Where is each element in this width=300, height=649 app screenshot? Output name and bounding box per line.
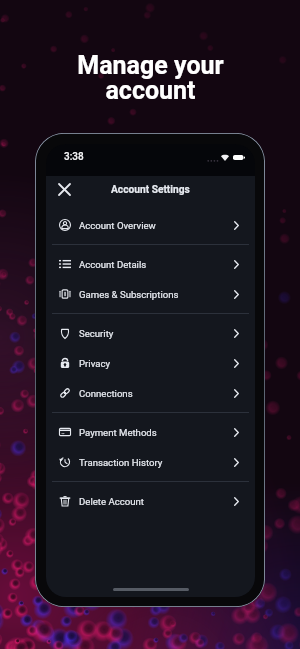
button[interactable]: Payment Methods xyxy=(46,417,255,447)
staticText: Delete Account xyxy=(79,496,144,507)
staticText: Account Overview xyxy=(79,220,156,231)
staticText: Privacy xyxy=(79,358,110,369)
button[interactable]: Close xyxy=(54,179,75,200)
button[interactable]: Account Overview xyxy=(46,210,255,240)
staticText: Account Settings xyxy=(111,184,190,196)
button[interactable]: Transaction History xyxy=(46,447,255,477)
staticText: 3:38 xyxy=(64,151,84,163)
button[interactable]: Security xyxy=(46,318,255,348)
button[interactable]: Connections xyxy=(46,378,255,408)
button[interactable]: Delete Account xyxy=(46,486,255,516)
button[interactable]: Games & Subscriptions xyxy=(46,279,255,309)
staticText: Security xyxy=(79,328,114,339)
staticText: Account Details xyxy=(79,259,147,270)
staticText: Transaction History xyxy=(79,457,163,468)
button[interactable]: Account Details xyxy=(46,249,255,279)
staticText: Manage your account xyxy=(77,51,224,105)
staticText: Connections xyxy=(79,388,133,399)
staticText: Games & Subscriptions xyxy=(79,289,179,300)
staticText: Payment Methods xyxy=(79,427,157,438)
button[interactable]: Privacy xyxy=(46,348,255,378)
